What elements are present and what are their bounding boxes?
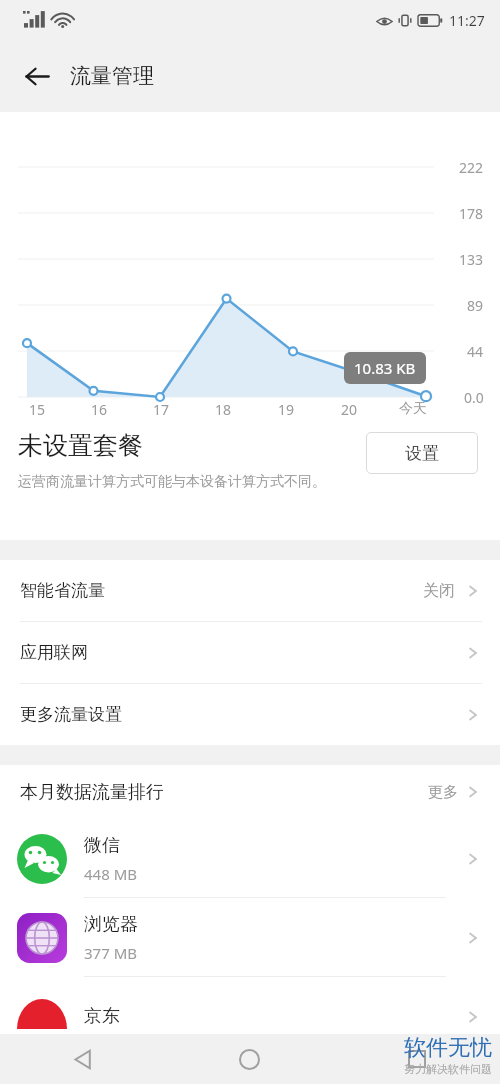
staticText: 19	[278, 400, 295, 419]
staticText: 更多	[428, 783, 458, 802]
staticText: 0.0	[464, 388, 484, 407]
staticText: 今天	[399, 400, 427, 418]
staticText: 17	[153, 400, 170, 419]
staticText: 智能省流量	[20, 580, 105, 601]
staticText: 微信	[84, 834, 120, 857]
staticText: 448 MB	[84, 864, 137, 884]
staticText: 流量管理	[70, 63, 154, 89]
button[interactable]: 更多流量设置	[0, 684, 500, 745]
staticText: 应用联网	[20, 642, 88, 663]
button[interactable]: 本月数据流量排行	[0, 765, 500, 819]
staticText: 377 MB	[84, 943, 137, 963]
button[interactable]: 浏览器	[0, 898, 500, 977]
staticText: 178	[459, 204, 484, 223]
staticText: 运营商流量计算方式可能与本设备计算方式不同。	[18, 473, 326, 491]
staticText: 更多流量设置	[20, 704, 122, 725]
staticText: 浏览器	[84, 913, 138, 936]
button[interactable]: 设置	[366, 432, 478, 474]
staticText: 16	[91, 400, 108, 419]
staticText: 关闭	[423, 581, 455, 601]
button[interactable]: 应用联网	[0, 622, 500, 684]
staticText: 京东	[84, 1005, 120, 1028]
staticText: 未设置套餐	[18, 430, 143, 461]
button[interactable]: 微信	[0, 819, 500, 898]
button[interactable]: Recent apps	[333, 1034, 500, 1084]
staticText: 10.83 KB	[354, 358, 416, 378]
button[interactable]: 智能省流量	[0, 560, 500, 622]
staticText: 11:27	[449, 11, 485, 30]
button[interactable]: Back	[14, 53, 60, 99]
staticText: 20	[341, 400, 358, 419]
staticText: 15	[29, 400, 46, 419]
button[interactable]: Home	[166, 1034, 333, 1084]
staticText: 设置	[405, 443, 439, 464]
staticText: 本月数据流量排行	[20, 781, 164, 804]
staticText: 222	[459, 158, 484, 177]
staticText: 软件无忧	[404, 1034, 492, 1062]
button[interactable]: 10.83 KB	[344, 352, 426, 384]
staticText: 努力解决软件问题	[404, 1062, 492, 1076]
staticText: 18	[215, 400, 232, 419]
staticText: 44	[467, 342, 484, 361]
staticText: 133	[459, 250, 484, 269]
button[interactable]: 京东	[0, 977, 500, 1056]
button[interactable]: Back	[0, 1034, 166, 1084]
staticText: 89	[467, 296, 484, 315]
